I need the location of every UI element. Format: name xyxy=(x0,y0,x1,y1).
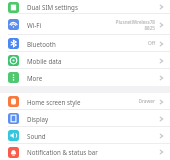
staticText: Home screen style xyxy=(27,98,138,106)
staticText: Drawer xyxy=(138,98,155,105)
button[interactable]: Sound xyxy=(0,127,170,144)
button[interactable]: More xyxy=(0,69,170,86)
button[interactable]: Home screen style xyxy=(0,93,170,110)
button[interactable]: Wi-Fi xyxy=(0,14,170,35)
staticText: 8825 xyxy=(144,25,155,31)
staticText: Off xyxy=(147,40,155,47)
staticText: PlusnetWireless78 xyxy=(115,19,155,25)
staticText: Notification & status bar xyxy=(27,148,159,156)
button[interactable]: Dual SIM settings xyxy=(0,0,170,14)
staticText: Bluetooth xyxy=(27,40,147,48)
staticText: More xyxy=(27,74,159,82)
staticText: Mobile data xyxy=(27,57,159,65)
staticText: Wi-Fi xyxy=(27,21,115,29)
staticText: Sound xyxy=(27,132,159,140)
button[interactable]: Notification & status bar xyxy=(0,144,170,160)
staticText: Dual SIM settings xyxy=(27,3,159,11)
button[interactable]: Mobile data xyxy=(0,52,170,69)
button[interactable]: Bluetooth xyxy=(0,35,170,52)
staticText: Display xyxy=(27,115,159,123)
button[interactable]: Display xyxy=(0,110,170,127)
